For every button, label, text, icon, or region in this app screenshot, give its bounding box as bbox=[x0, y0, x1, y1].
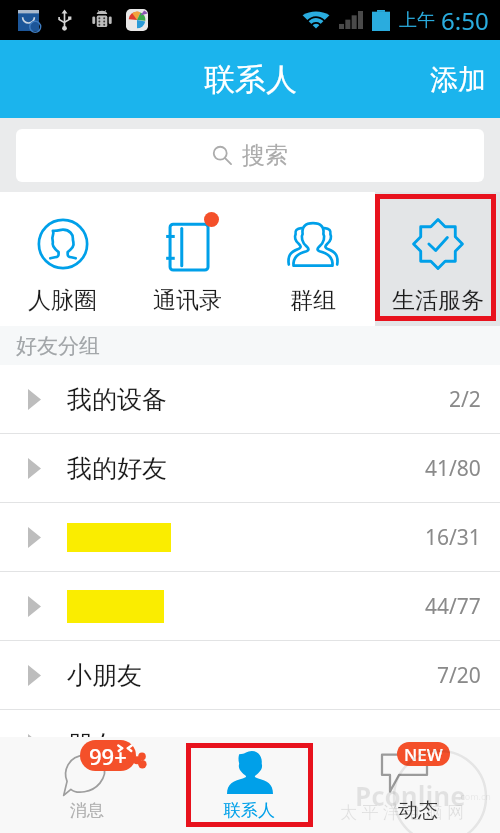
staticText: 联系人 bbox=[204, 60, 297, 99]
staticText: 生活服务 bbox=[392, 286, 484, 315]
staticText: 99+ bbox=[89, 741, 127, 771]
staticText: 群组 bbox=[290, 286, 336, 315]
staticText: .com.cn bbox=[458, 790, 491, 802]
staticText: 添加 bbox=[430, 62, 486, 97]
button[interactable]: NEW bbox=[333, 737, 500, 833]
button[interactable]: 99+ bbox=[0, 737, 166, 833]
staticText: NEW bbox=[404, 743, 443, 766]
staticText: 2/2 bbox=[449, 385, 481, 414]
staticText: 16/31 bbox=[425, 523, 481, 552]
staticText: 朋友 bbox=[67, 729, 117, 760]
staticText: 上午 bbox=[399, 9, 435, 32]
staticText: 6:50 bbox=[441, 4, 489, 37]
staticText: 通讯录 bbox=[153, 286, 222, 315]
button[interactable]: 搜索 bbox=[16, 129, 484, 182]
button[interactable]: 生活服务 bbox=[375, 192, 500, 326]
button[interactable]: 我的设备 bbox=[0, 365, 500, 434]
staticText: 联系人 bbox=[224, 800, 275, 821]
button[interactable]: 添加 bbox=[410, 40, 500, 118]
staticText: Pconline bbox=[355, 778, 466, 813]
staticText: 小朋友 bbox=[67, 660, 142, 691]
button[interactable]: 16/31 bbox=[0, 503, 500, 572]
staticText: 人脉圈 bbox=[28, 286, 97, 315]
staticText: 消息 bbox=[70, 800, 104, 821]
button[interactable]: 通讯录 bbox=[125, 192, 250, 326]
staticText: 44/77 bbox=[425, 592, 481, 621]
staticText: 41/80 bbox=[425, 454, 481, 483]
staticText: 我的好友 bbox=[67, 453, 167, 484]
staticText: 好友分组 bbox=[16, 333, 100, 359]
staticText: 7/20 bbox=[437, 661, 481, 690]
button[interactable]: 群组 bbox=[250, 192, 375, 326]
button[interactable]: 朋友 bbox=[0, 710, 500, 779]
button[interactable]: 联系人 bbox=[166, 737, 333, 833]
button[interactable]: 44/77 bbox=[0, 572, 500, 641]
staticText: 搜索 bbox=[242, 141, 288, 170]
staticText: 我的设备 bbox=[67, 384, 167, 415]
button[interactable]: 我的好友 bbox=[0, 434, 500, 503]
staticText: 太 平 洋 电 脑 网 bbox=[340, 800, 465, 823]
button[interactable]: 人脉圈 bbox=[0, 192, 125, 326]
staticText: 动态 bbox=[398, 798, 438, 823]
button[interactable]: 小朋友 bbox=[0, 641, 500, 710]
